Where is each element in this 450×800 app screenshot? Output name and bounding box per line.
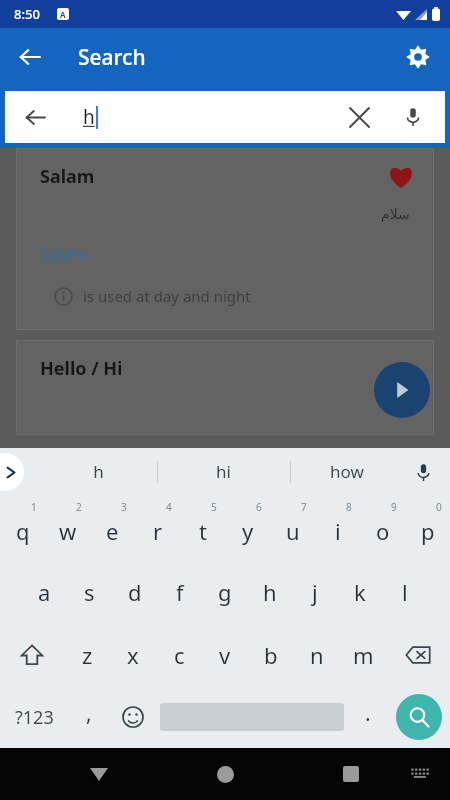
button[interactable]: Settings <box>394 33 442 81</box>
staticText: m <box>353 640 374 670</box>
button[interactable]: Voice search <box>393 97 433 137</box>
staticText: A <box>60 9 66 20</box>
staticText: . <box>365 699 371 728</box>
button[interactable]: ?123 <box>0 686 68 748</box>
button[interactable]: Home <box>201 750 249 798</box>
staticText: 8:50 <box>14 5 40 23</box>
staticText: e <box>106 516 119 546</box>
button[interactable]: r <box>135 495 180 560</box>
button[interactable]: Expand suggestions <box>0 453 24 491</box>
staticText: 3 <box>121 500 127 514</box>
staticText: g <box>218 577 232 607</box>
staticText: u <box>286 516 300 546</box>
staticText: p <box>421 516 435 546</box>
button[interactable]: j <box>292 560 337 623</box>
button[interactable]: q <box>0 495 45 560</box>
staticText: q <box>16 516 30 546</box>
staticText: 5 <box>211 500 217 514</box>
staticText: k <box>354 577 366 607</box>
staticText: ?123 <box>15 705 54 730</box>
staticText: x <box>127 640 139 670</box>
staticText: o <box>376 516 390 546</box>
button[interactable]: Back <box>6 33 54 81</box>
button[interactable]: Voice input <box>404 453 442 491</box>
staticText: b <box>264 640 278 670</box>
button[interactable]: i <box>315 495 360 560</box>
staticText: h <box>263 577 277 607</box>
staticText: 1 <box>31 500 37 514</box>
button[interactable]: Clear <box>339 97 379 137</box>
button[interactable]: d <box>112 560 157 623</box>
button[interactable]: k <box>337 560 382 623</box>
staticText: hi <box>216 460 231 483</box>
button[interactable]: x <box>110 623 156 686</box>
staticText: Salam <box>40 164 95 189</box>
staticText: 7 <box>301 500 307 514</box>
button[interactable]: l <box>382 560 427 623</box>
button[interactable]: z <box>64 623 110 686</box>
staticText: , <box>86 699 92 728</box>
button[interactable]: Switch keyboard <box>398 752 442 796</box>
button[interactable]: b <box>248 623 294 686</box>
button[interactable]: h <box>46 448 150 495</box>
staticText: Hello / Hi <box>40 356 123 381</box>
button[interactable]: Search <box>396 694 442 740</box>
button[interactable]: m <box>340 623 386 686</box>
button[interactable]: g <box>202 560 247 623</box>
button[interactable]: hi <box>171 448 275 495</box>
staticText: n <box>310 640 324 670</box>
button[interactable]: Shift <box>0 623 64 686</box>
button[interactable]: a <box>22 560 67 623</box>
button[interactable]: how <box>295 448 399 495</box>
staticText: 9 <box>391 500 397 514</box>
button[interactable]: c <box>156 623 202 686</box>
staticText: is used at day and night <box>83 286 251 306</box>
button[interactable]: e <box>90 495 135 560</box>
staticText: l <box>402 577 408 607</box>
button[interactable]: f <box>157 560 202 623</box>
staticText: 0 <box>436 500 442 514</box>
button[interactable]: u <box>270 495 315 560</box>
staticText: t <box>199 516 207 546</box>
staticText: Search <box>78 43 146 72</box>
button[interactable]: . <box>348 686 388 748</box>
button[interactable]: p <box>405 495 450 560</box>
staticText: a <box>38 577 51 607</box>
staticText: c <box>174 640 185 670</box>
button[interactable]: h <box>247 560 292 623</box>
button[interactable]: n <box>294 623 340 686</box>
staticText: v <box>219 640 231 670</box>
staticText: h <box>93 460 104 483</box>
button[interactable]: Play <box>374 362 430 418</box>
staticText: i <box>335 516 341 546</box>
staticText: z <box>82 640 93 670</box>
button[interactable]: v <box>202 623 248 686</box>
staticText: d <box>128 577 142 607</box>
staticText: y <box>242 516 254 546</box>
staticText: سلام <box>381 206 410 222</box>
staticText: f <box>176 577 184 607</box>
staticText: r <box>153 516 163 546</box>
button[interactable]: Back <box>5 91 445 143</box>
staticText: 6 <box>256 500 262 514</box>
button[interactable]: Back <box>15 97 55 137</box>
button[interactable]: w <box>45 495 90 560</box>
staticText: 4 <box>166 500 172 514</box>
button[interactable]: Backspace <box>386 623 450 686</box>
button[interactable]: s <box>67 560 112 623</box>
button[interactable]: Emoji <box>110 686 156 748</box>
staticText: s <box>84 577 95 607</box>
staticText: 2 <box>76 500 82 514</box>
button[interactable]: Hide keyboard <box>75 750 123 798</box>
staticText: Salam <box>40 242 89 265</box>
button[interactable]: t <box>180 495 225 560</box>
staticText: how <box>330 460 364 483</box>
staticText: 8 <box>346 500 352 514</box>
button[interactable]: , <box>68 686 110 748</box>
button[interactable]: Recents <box>327 750 375 798</box>
staticText: w <box>59 516 77 546</box>
button[interactable]: y <box>225 495 270 560</box>
button[interactable]: Space <box>156 686 348 748</box>
button[interactable]: o <box>360 495 405 560</box>
